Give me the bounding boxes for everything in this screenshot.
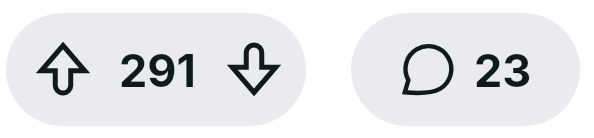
staticText: 291 [119,43,196,97]
button[interactable]: Upvote [6,13,118,126]
button[interactable]: 23 [351,13,580,126]
button[interactable]: Downvote [196,13,306,126]
staticText: 23 [474,43,532,97]
